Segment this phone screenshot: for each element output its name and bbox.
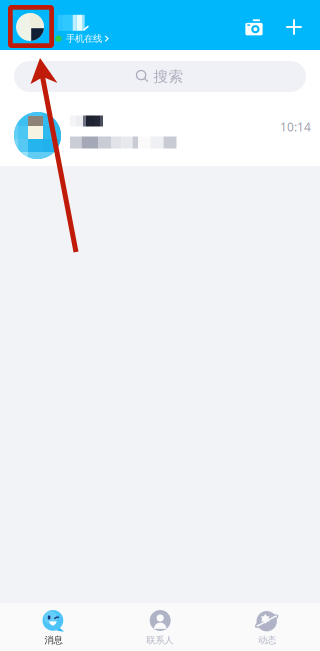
button[interactable]: 搜索 bbox=[14, 61, 306, 92]
button[interactable]: 动态 bbox=[213, 603, 320, 651]
staticText: 手机在线 bbox=[66, 33, 102, 44]
staticText: 搜索 bbox=[153, 67, 183, 85]
button[interactable]: 消息 bbox=[0, 603, 107, 651]
staticText: 10:14 bbox=[280, 119, 311, 135]
button[interactable]: Camera bbox=[245, 17, 263, 33]
staticText: 联系人 bbox=[146, 634, 173, 646]
button[interactable]: 联系人 bbox=[107, 603, 213, 651]
staticText: 消息 bbox=[44, 634, 62, 646]
button[interactable]: 手机在线 bbox=[55, 32, 165, 45]
button[interactable]: Profile bbox=[16, 13, 44, 41]
button[interactable]: 10:14 bbox=[0, 100, 320, 166]
staticText: 动态 bbox=[258, 634, 276, 646]
button[interactable]: Add bbox=[286, 19, 302, 35]
